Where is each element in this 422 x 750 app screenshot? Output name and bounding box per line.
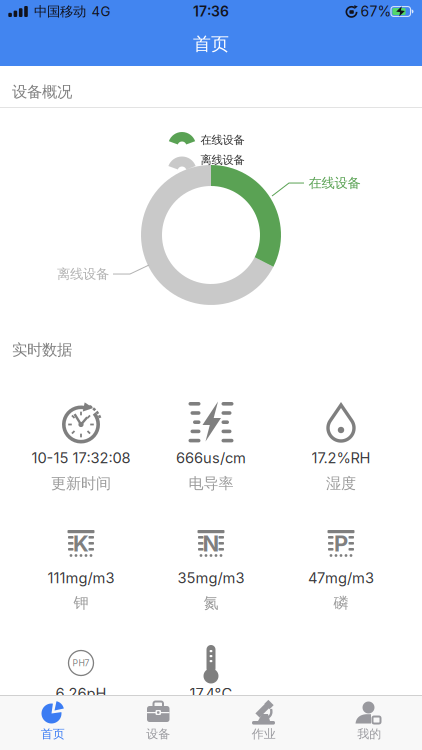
staticText: 湿度 xyxy=(326,474,356,493)
staticText: 首页 xyxy=(193,33,229,55)
staticText: 4G xyxy=(91,4,110,19)
staticText: 设备 xyxy=(146,727,170,741)
staticText: 47mg/m3 xyxy=(308,569,374,587)
staticText: 17.2%RH xyxy=(311,449,370,467)
staticText: PH7 xyxy=(72,658,89,668)
staticText: 离线设备 xyxy=(57,266,109,282)
staticText: 更新时间 xyxy=(51,474,111,493)
staticText: 首页 xyxy=(41,727,65,741)
staticText: 设备概况 xyxy=(12,83,72,101)
staticText: 钾 xyxy=(73,594,88,612)
staticText: 35mg/m3 xyxy=(177,569,244,587)
staticText: 离线设备 xyxy=(200,153,244,167)
staticText: 10-15 17:32:08 xyxy=(31,449,130,467)
staticText: 111mg/m3 xyxy=(47,569,114,587)
staticText: 在线设备 xyxy=(308,175,360,191)
staticText: 67% xyxy=(360,3,391,20)
staticText: P xyxy=(334,530,348,556)
staticText: 实时数据 xyxy=(12,341,72,359)
staticText: 666us/cm xyxy=(176,449,246,467)
staticText: 氮 xyxy=(203,594,218,612)
staticText: 在线设备 xyxy=(200,133,244,147)
staticText: 6.26pH xyxy=(55,685,106,702)
staticText: 17:36 xyxy=(193,3,229,20)
staticText: 17.4°C xyxy=(189,685,232,702)
staticText: N xyxy=(202,530,219,556)
staticText: 电导率 xyxy=(188,474,233,493)
staticText: 磷 xyxy=(333,594,348,612)
staticText: 我的 xyxy=(357,727,381,741)
staticText: K xyxy=(73,530,89,556)
staticText: 中国移动 xyxy=(34,3,86,20)
staticText: 作业 xyxy=(252,727,276,741)
